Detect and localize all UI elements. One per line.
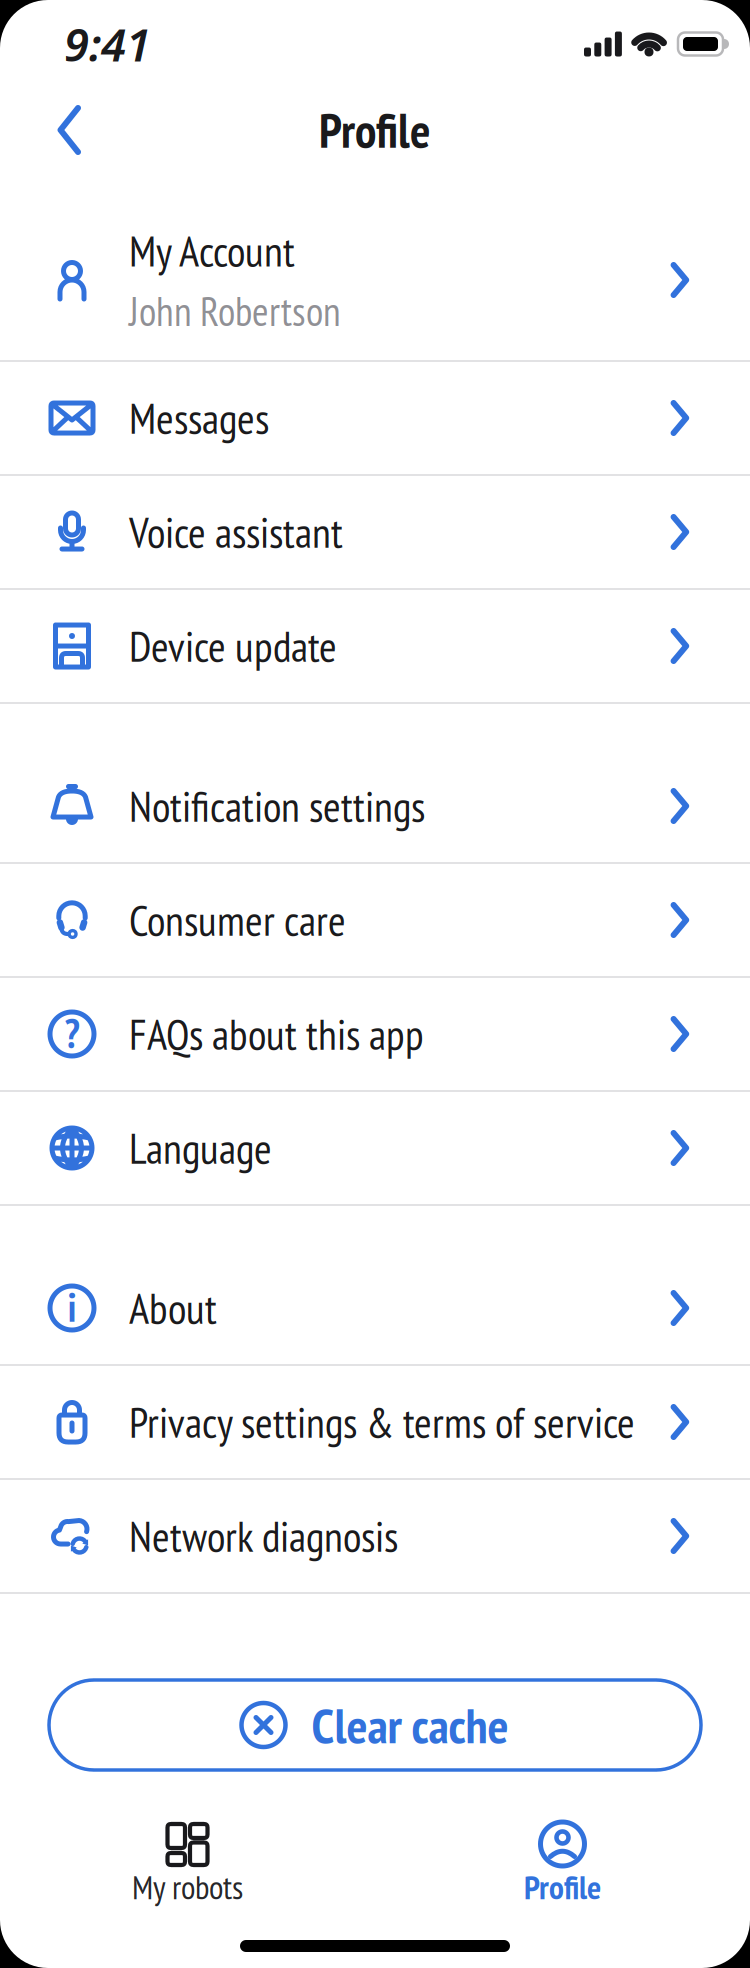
- staticText: 9:41: [64, 14, 151, 74]
- button[interactable]: My robots: [0, 1822, 375, 1903]
- button[interactable]: Clear cache: [49, 1680, 701, 1770]
- staticText: Profile: [524, 1865, 601, 1908]
- staticText: Messages: [129, 390, 269, 446]
- staticText: Voice assistant: [129, 504, 343, 560]
- button[interactable]: Messages: [0, 362, 750, 474]
- staticText: My robots: [132, 1865, 243, 1908]
- staticText: Clear cache: [311, 1693, 508, 1757]
- button[interactable]: ?: [0, 978, 750, 1090]
- button[interactable]: Consumer care: [0, 864, 750, 976]
- button[interactable]: i: [0, 1252, 750, 1364]
- staticText: Consumer care: [129, 892, 346, 948]
- staticText: About: [129, 1280, 217, 1336]
- staticText: ?: [64, 1007, 79, 1059]
- button[interactable]: Privacy settings & terms of service: [0, 1366, 750, 1478]
- staticText: Profile: [319, 99, 431, 161]
- staticText: FAQs about this app: [129, 1006, 424, 1062]
- button[interactable]: Network diagnosis: [0, 1480, 750, 1592]
- button[interactable]: Voice assistant: [0, 476, 750, 588]
- staticText: Device update: [129, 618, 337, 674]
- button[interactable]: My Account: [0, 200, 750, 360]
- staticText: Language: [129, 1120, 272, 1176]
- button[interactable]: Back: [0, 108, 83, 152]
- button[interactable]: Device update: [0, 590, 750, 702]
- staticText: Notification settings: [129, 778, 425, 834]
- button[interactable]: Language: [0, 1092, 750, 1204]
- staticText: John Robertson: [129, 285, 341, 337]
- staticText: Privacy settings & terms of service: [129, 1394, 635, 1450]
- staticText: i: [67, 1281, 76, 1333]
- button[interactable]: Notification settings: [0, 750, 750, 862]
- button[interactable]: Profile: [375, 1822, 750, 1903]
- staticText: Network diagnosis: [129, 1508, 398, 1564]
- staticText: My Account: [129, 223, 295, 278]
